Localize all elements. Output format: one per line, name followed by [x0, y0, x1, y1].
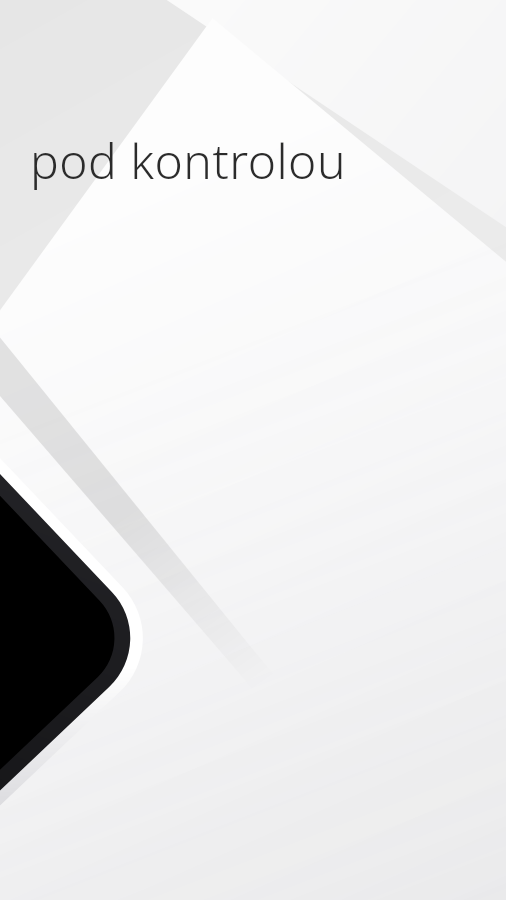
- button[interactable]: pod kontrolou promo screen: [0, 0, 506, 900]
